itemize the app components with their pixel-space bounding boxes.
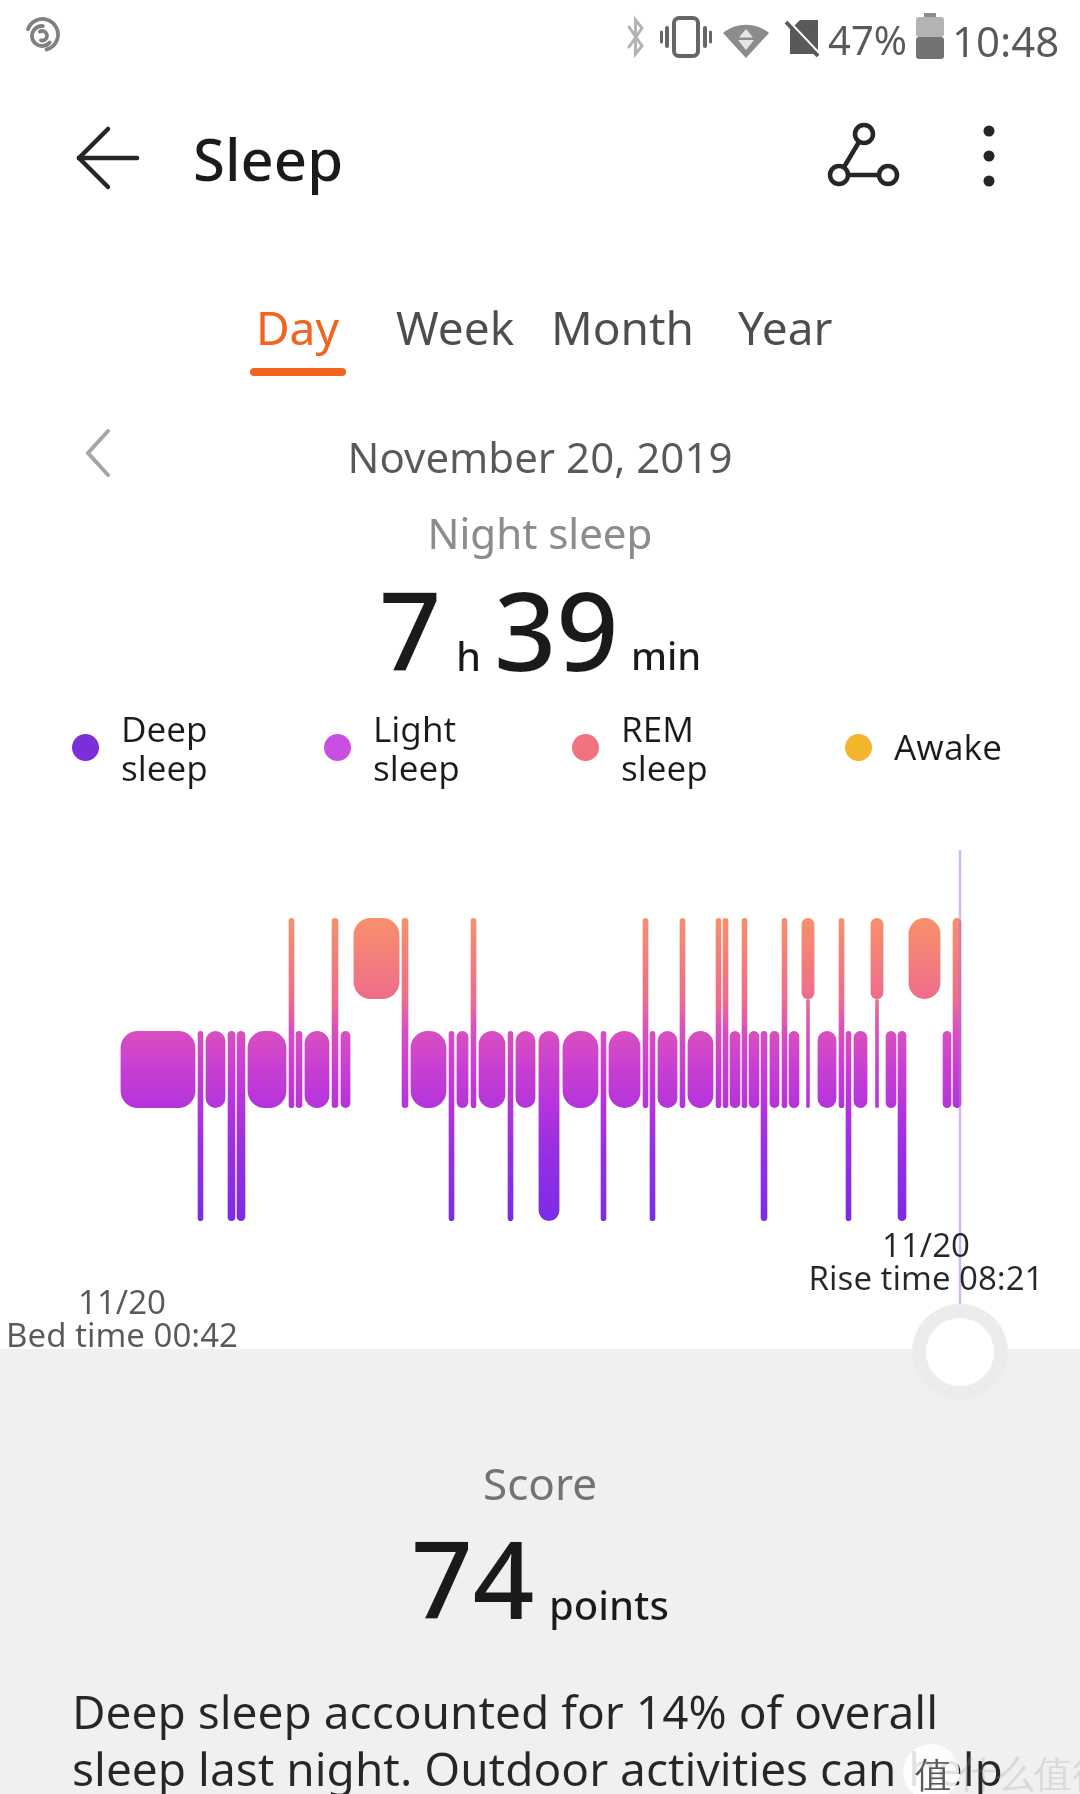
button[interactable] bbox=[820, 115, 910, 200]
staticText: 7 bbox=[379, 554, 442, 684]
staticText: Day bbox=[256, 296, 339, 359]
staticText: Year bbox=[738, 296, 833, 359]
staticText: Sleep bbox=[193, 119, 344, 198]
button[interactable] bbox=[952, 115, 1027, 200]
staticText: 什么值得买 bbox=[958, 1750, 1080, 1794]
staticText: Night sleep bbox=[0, 504, 1080, 561]
staticText: 10:48 bbox=[952, 12, 1060, 69]
staticText: Score bbox=[0, 1453, 1080, 1513]
staticText: points bbox=[549, 1577, 669, 1631]
staticText: 74 bbox=[411, 1504, 535, 1629]
staticText: h bbox=[456, 628, 482, 682]
staticText: 11/20 Bed time 00:42 bbox=[0, 1279, 254, 1357]
staticText: Deep sleep bbox=[121, 705, 208, 789]
button[interactable]: Year bbox=[710, 296, 860, 376]
button[interactable]: Day bbox=[220, 296, 375, 376]
staticText: Deep sleep accounted for 14% of overall … bbox=[72, 1680, 1003, 1794]
staticText: November 20, 2019 bbox=[0, 428, 1080, 485]
staticText: min bbox=[631, 629, 702, 681]
staticText: 11/20 Rise time 08:21 bbox=[756, 1222, 1080, 1300]
button[interactable] bbox=[80, 429, 120, 477]
staticText: 39 bbox=[494, 554, 619, 684]
staticText: Awake bbox=[894, 723, 1002, 771]
button[interactable] bbox=[60, 118, 156, 198]
staticText: Week bbox=[396, 296, 515, 359]
button[interactable] bbox=[926, 1318, 994, 1386]
staticText: Month bbox=[551, 296, 695, 359]
staticText: 47% bbox=[828, 12, 907, 66]
button[interactable]: Month bbox=[535, 296, 710, 376]
button[interactable]: Week bbox=[375, 296, 535, 376]
staticText: Light sleep bbox=[373, 705, 460, 789]
staticText: REM sleep bbox=[621, 705, 708, 789]
staticText: 值 bbox=[915, 1752, 951, 1794]
